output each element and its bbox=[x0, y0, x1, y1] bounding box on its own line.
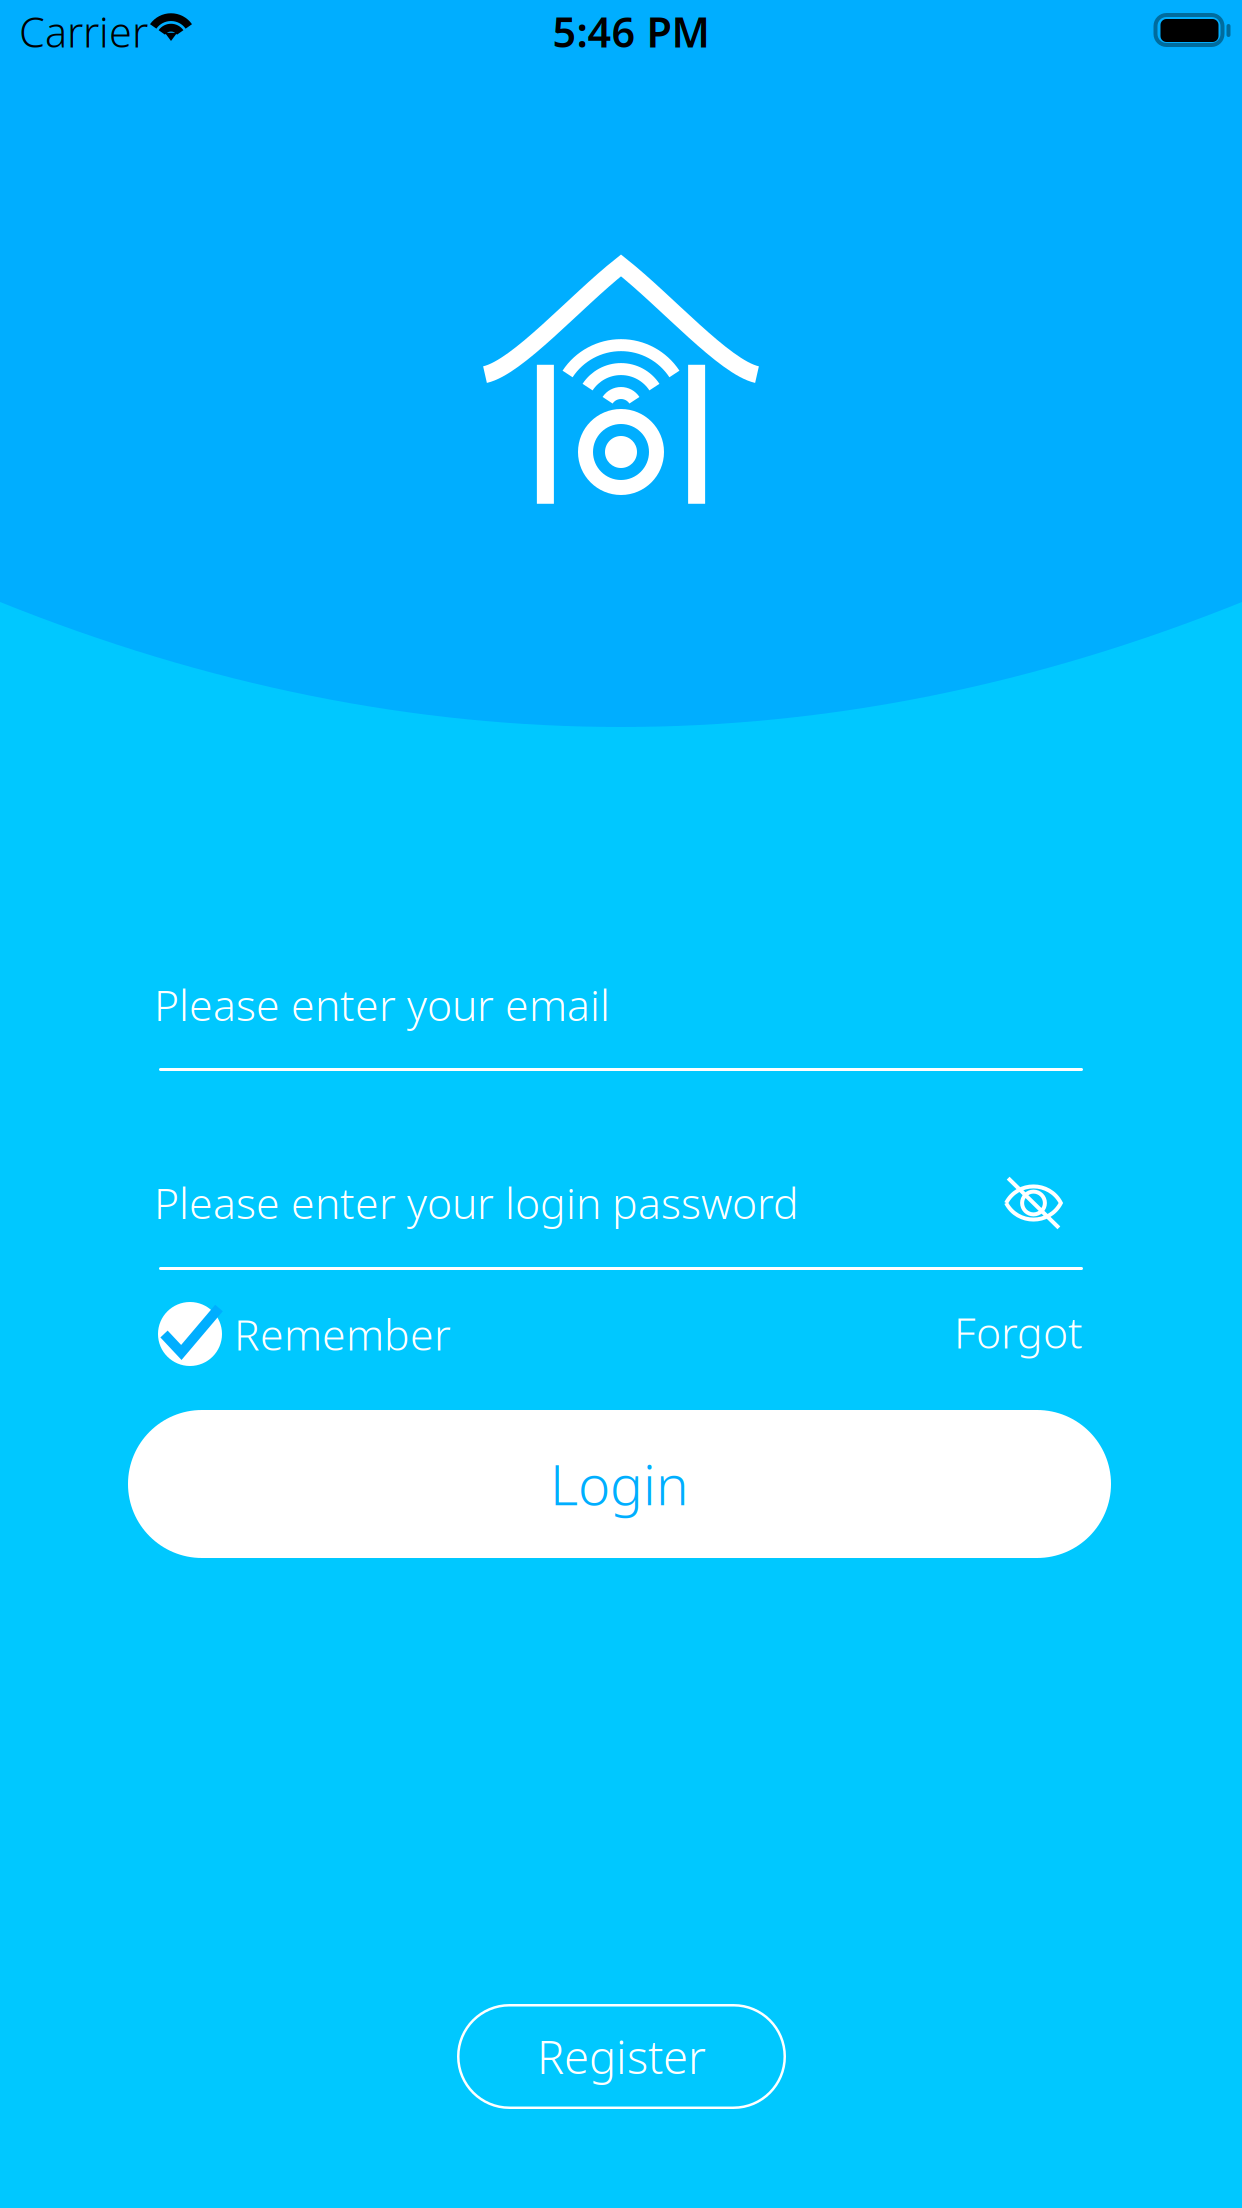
staticText: Please enter your login password bbox=[154, 1174, 799, 1231]
staticText: Please enter your email bbox=[154, 976, 610, 1033]
staticText: Remember bbox=[234, 1306, 451, 1362]
staticText: 5:46 PM bbox=[552, 4, 709, 59]
button[interactable]: Login bbox=[128, 1410, 1111, 1558]
button[interactable]: Remember bbox=[158, 1302, 451, 1366]
staticText: Register bbox=[537, 2026, 706, 2087]
staticText: Login bbox=[550, 1448, 689, 1520]
button[interactable]: Forgot bbox=[943, 1300, 1083, 1364]
button[interactable]: Show password bbox=[991, 1166, 1076, 1240]
staticText: Carrier bbox=[19, 4, 148, 59]
staticText: Forgot bbox=[954, 1304, 1083, 1360]
button[interactable]: Register bbox=[457, 2004, 786, 2109]
